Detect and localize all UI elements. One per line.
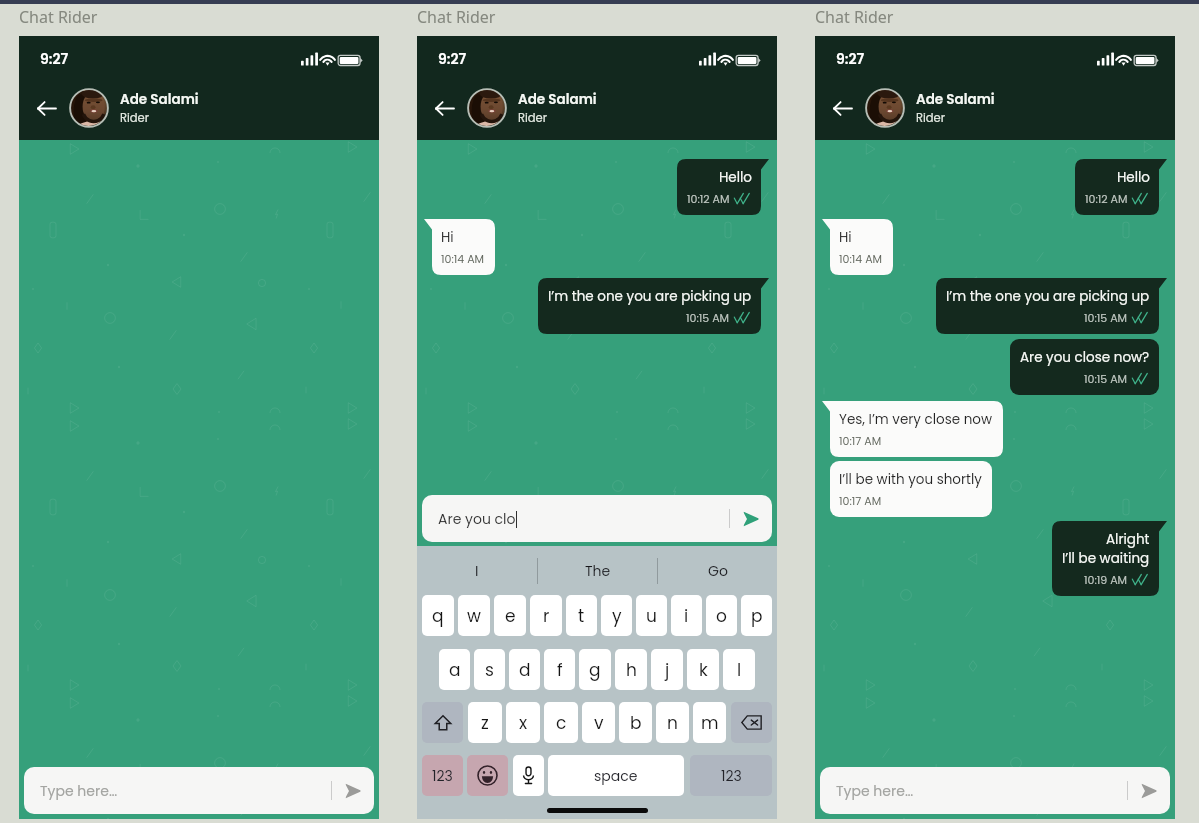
staticText: I’m the one you are picking up [946, 287, 1150, 306]
button[interactable]: Shift [422, 702, 463, 743]
button[interactable]: Hello [677, 159, 769, 215]
staticText: Chat Rider [815, 6, 894, 28]
staticText: r [543, 604, 550, 628]
button[interactable]: Voice input [513, 755, 544, 796]
button[interactable]: m [693, 702, 726, 743]
button[interactable]: l [723, 649, 755, 690]
button[interactable]: Hi [424, 219, 495, 275]
staticText: 9:27 [438, 49, 467, 69]
button[interactable]: Type here… [24, 767, 374, 814]
button[interactable]: Hello [1075, 159, 1167, 215]
button[interactable]: s [474, 649, 505, 690]
staticText: Hello [1117, 168, 1150, 187]
button[interactable]: Hi [822, 219, 893, 275]
button[interactable]: k [687, 649, 719, 690]
staticText: i [684, 604, 689, 628]
staticText: n [667, 711, 678, 735]
staticText: 10:14 AM [441, 251, 485, 266]
staticText: Hi [441, 228, 454, 247]
staticText: m [701, 711, 719, 735]
button[interactable]: w [458, 595, 490, 636]
button[interactable]: Yes, I’m very close now [822, 401, 1003, 457]
staticText: w [467, 604, 481, 628]
button[interactable]: I’m the one you are picking up [538, 278, 769, 334]
staticText: a [449, 658, 461, 682]
button[interactable]: u [636, 595, 667, 636]
staticText: f [557, 658, 563, 682]
staticText: The [585, 561, 611, 581]
button[interactable]: Send [332, 767, 374, 814]
button[interactable]: 123 [422, 755, 463, 796]
staticText: space [594, 766, 638, 786]
button[interactable]: d [509, 649, 540, 690]
staticText: Type here… [40, 781, 118, 801]
button[interactable]: q [422, 595, 454, 636]
staticText: q [432, 604, 444, 628]
staticText: Type here… [836, 781, 914, 801]
button[interactable]: j [651, 649, 683, 690]
button[interactable]: Back [429, 93, 459, 123]
button[interactable]: Type here… [820, 767, 1170, 814]
staticText: Alright [1106, 530, 1150, 549]
button[interactable]: I’ll be with you shortly [830, 461, 992, 517]
staticText: b [630, 711, 642, 735]
staticText: I’m the one you are picking up [548, 287, 752, 306]
button[interactable]: o [706, 595, 737, 636]
button[interactable]: i [671, 595, 702, 636]
staticText: Rider [120, 110, 150, 126]
button[interactable]: r [530, 595, 562, 636]
staticText: 10:14 AM [839, 251, 883, 266]
button[interactable]: n [656, 702, 689, 743]
staticText: Go [708, 561, 728, 581]
button[interactable]: f [544, 649, 575, 690]
staticText: x [519, 711, 528, 735]
button[interactable]: I [417, 546, 537, 595]
staticText: 10:17 AM [839, 433, 882, 448]
button[interactable]: The [538, 546, 657, 595]
staticText: Ade Salami [120, 90, 199, 109]
staticText: g [589, 658, 601, 682]
staticText: z [481, 711, 489, 735]
staticText: I [475, 561, 479, 581]
staticText: v [594, 711, 604, 735]
staticText: 10:17 AM [839, 493, 882, 508]
button[interactable]: x [506, 702, 540, 743]
button[interactable]: b [619, 702, 652, 743]
button[interactable]: c [544, 702, 578, 743]
button[interactable]: Go [658, 546, 777, 595]
staticText: Chat Rider [417, 6, 496, 28]
button[interactable]: Are you clo [422, 495, 772, 542]
button[interactable]: Back [31, 93, 61, 123]
staticText: u [646, 604, 657, 628]
staticText: 9:27 [40, 49, 69, 69]
staticText: d [519, 658, 531, 682]
button[interactable]: e [494, 595, 526, 636]
staticText: t [578, 604, 585, 628]
button[interactable]: Send [730, 495, 772, 542]
button[interactable]: Send [1128, 767, 1170, 814]
button[interactable]: 123 [690, 755, 772, 796]
staticText: s [485, 658, 494, 682]
button[interactable]: t [566, 595, 597, 636]
staticText: h [626, 658, 637, 682]
button[interactable]: Are you close now? [1010, 339, 1159, 395]
staticText: Ade Salami [518, 90, 597, 109]
button[interactable]: y [601, 595, 632, 636]
button[interactable]: v [582, 702, 615, 743]
staticText: 10:15 AM [686, 310, 730, 325]
button[interactable]: Emoji [467, 755, 508, 796]
button[interactable]: I’m the one you are picking up [936, 278, 1167, 334]
button[interactable]: g [579, 649, 611, 690]
staticText: 123 [432, 766, 453, 786]
button[interactable]: Backspace [731, 702, 772, 743]
staticText: I’ll be with you shortly [839, 470, 982, 489]
staticText: o [716, 604, 727, 628]
button[interactable]: space [548, 755, 684, 796]
button[interactable]: Alright [1052, 521, 1167, 596]
button[interactable]: h [615, 649, 647, 690]
button[interactable]: p [741, 595, 772, 636]
button[interactable]: z [468, 702, 502, 743]
button[interactable]: a [439, 649, 470, 690]
button[interactable]: Back [827, 93, 857, 123]
staticText: Are you clo [438, 509, 516, 529]
